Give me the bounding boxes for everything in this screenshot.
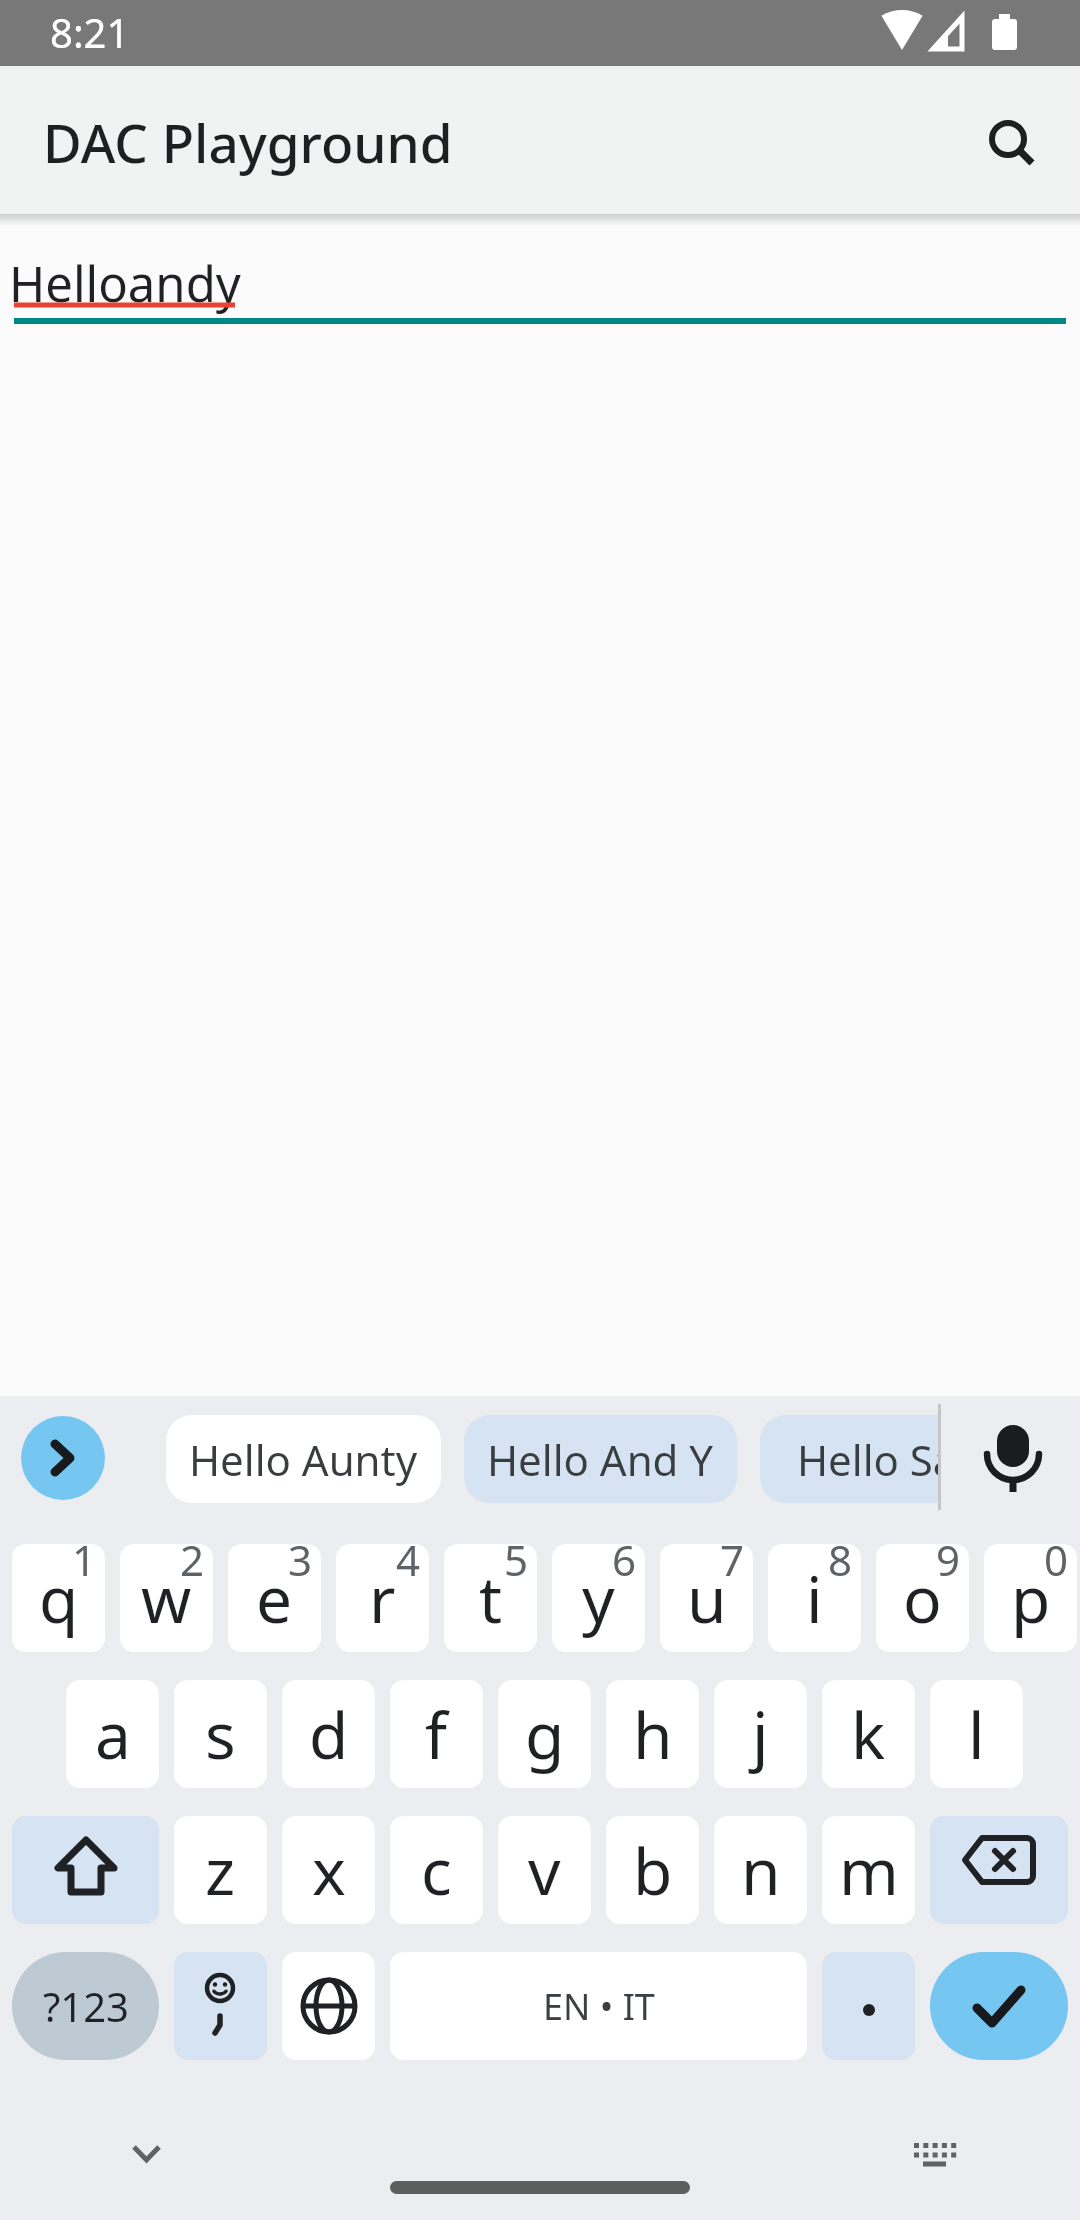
button[interactable]: g: [498, 1680, 591, 1788]
staticText: 8:21: [50, 5, 130, 59]
button[interactable]: [0, 226, 1080, 330]
staticText: x: [312, 1827, 346, 1914]
staticText: 0: [1044, 1544, 1069, 1588]
staticText: EN • IT: [543, 1982, 655, 2031]
button[interactable]: [12, 1816, 159, 1924]
button[interactable]: [966, 97, 1058, 189]
button[interactable]: [975, 1420, 1051, 1496]
button[interactable]: i: [768, 1544, 861, 1652]
staticText: 8: [828, 1544, 853, 1588]
staticText: 6: [612, 1544, 637, 1588]
staticText: 4: [396, 1544, 421, 1588]
button[interactable]: s: [174, 1680, 267, 1788]
button[interactable]: EN • IT: [390, 1952, 807, 2060]
button[interactable]: [100, 2110, 192, 2202]
staticText: DAC Playground: [43, 106, 453, 178]
staticText: q: [39, 1555, 79, 1642]
button[interactable]: [889, 2110, 981, 2202]
button[interactable]: y: [552, 1544, 645, 1652]
staticText: 7: [720, 1544, 745, 1588]
button[interactable]: [282, 1952, 375, 2060]
button[interactable]: [930, 1816, 1068, 1924]
button[interactable]: x: [282, 1816, 375, 1924]
button[interactable]: Hello And Y: [464, 1415, 737, 1503]
staticText: k: [851, 1691, 886, 1778]
staticText: h: [633, 1691, 673, 1778]
button[interactable]: l: [930, 1680, 1023, 1788]
button[interactable]: n: [714, 1816, 807, 1924]
button[interactable]: [822, 1952, 915, 2060]
staticText: ?123: [43, 1979, 129, 2033]
staticText: 3: [288, 1544, 313, 1588]
staticText: c: [421, 1827, 452, 1914]
staticText: f: [425, 1691, 448, 1778]
button[interactable]: [174, 1952, 267, 2060]
button[interactable]: b: [606, 1816, 699, 1924]
button[interactable]: o: [876, 1544, 969, 1652]
button[interactable]: h: [606, 1680, 699, 1788]
button[interactable]: q: [12, 1544, 105, 1652]
staticText: w: [141, 1555, 192, 1642]
button[interactable]: a: [66, 1680, 159, 1788]
button[interactable]: c: [390, 1816, 483, 1924]
staticText: 9: [936, 1544, 961, 1588]
button[interactable]: v: [498, 1816, 591, 1924]
staticText: e: [256, 1555, 293, 1642]
button[interactable]: u: [660, 1544, 753, 1652]
button[interactable]: t: [444, 1544, 537, 1652]
button[interactable]: w: [120, 1544, 213, 1652]
button[interactable]: d: [282, 1680, 375, 1788]
staticText: v: [528, 1827, 561, 1914]
staticText: m: [839, 1827, 899, 1914]
staticText: t: [479, 1555, 503, 1642]
staticText: Hello Sa: [797, 1431, 938, 1488]
button[interactable]: [930, 1952, 1068, 2060]
staticText: 2: [180, 1544, 205, 1588]
staticText: n: [741, 1827, 781, 1914]
staticText: a: [95, 1691, 131, 1778]
staticText: j: [752, 1691, 769, 1778]
button[interactable]: m: [822, 1816, 915, 1924]
staticText: 5: [504, 1544, 529, 1588]
button[interactable]: z: [174, 1816, 267, 1924]
button[interactable]: f: [390, 1680, 483, 1788]
button[interactable]: p: [984, 1544, 1077, 1652]
staticText: p: [1011, 1555, 1051, 1642]
staticText: s: [205, 1691, 236, 1778]
staticText: d: [309, 1691, 349, 1778]
staticText: Helloandy: [9, 250, 241, 317]
staticText: g: [525, 1691, 565, 1778]
button[interactable]: [21, 1416, 105, 1500]
button[interactable]: Hello Aunty: [166, 1415, 441, 1503]
staticText: Hello Aunty: [189, 1431, 418, 1488]
staticText: u: [687, 1555, 727, 1642]
button[interactable]: Hello Sa: [760, 1415, 938, 1503]
staticText: 1: [72, 1544, 97, 1588]
staticText: i: [806, 1555, 823, 1642]
staticText: l: [968, 1691, 985, 1778]
button[interactable]: ?123: [12, 1952, 159, 2060]
staticText: b: [633, 1827, 673, 1914]
staticText: o: [903, 1555, 942, 1642]
staticText: z: [205, 1827, 236, 1914]
button[interactable]: k: [822, 1680, 915, 1788]
staticText: y: [582, 1555, 615, 1642]
button[interactable]: e: [228, 1544, 321, 1652]
staticText: r: [369, 1555, 396, 1642]
button[interactable]: j: [714, 1680, 807, 1788]
button[interactable]: r: [336, 1544, 429, 1652]
staticText: Hello And Y: [487, 1431, 714, 1488]
